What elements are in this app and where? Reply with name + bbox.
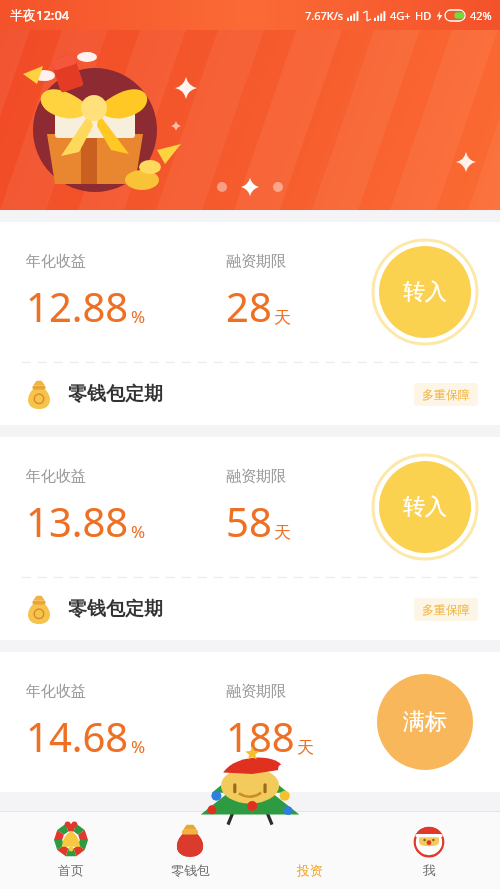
button[interactable]: 满标 bbox=[372, 669, 478, 775]
button[interactable]: 零钱包 bbox=[142, 812, 238, 889]
staticText: 188 bbox=[226, 709, 295, 763]
button[interactable]: 年化收益 bbox=[0, 652, 500, 792]
staticText: 零钱包 bbox=[171, 862, 210, 878]
button[interactable]: 我 bbox=[381, 812, 477, 889]
staticText: 28 bbox=[226, 279, 272, 333]
staticText: 多重保障 bbox=[422, 387, 470, 402]
staticText: 7.67K/s bbox=[305, 8, 343, 23]
staticText: 我 bbox=[423, 862, 436, 878]
staticText: 4G+ bbox=[390, 8, 411, 23]
staticText: 年化收益 bbox=[26, 467, 86, 486]
staticText: 首页 bbox=[58, 862, 84, 878]
staticText: 融资期限 bbox=[226, 467, 286, 486]
button[interactable]: 投资 吉祥物 bbox=[194, 749, 306, 827]
staticText: 14.68 bbox=[26, 709, 129, 763]
staticText: % bbox=[131, 520, 146, 543]
staticText: 年化收益 bbox=[26, 252, 86, 271]
button[interactable]: 转入 bbox=[372, 239, 478, 345]
staticText: HD bbox=[415, 8, 432, 23]
staticText: % bbox=[131, 305, 146, 328]
staticText: 转入 bbox=[403, 493, 447, 521]
button[interactable]: 投资 bbox=[262, 812, 358, 889]
staticText: 零钱包定期 bbox=[68, 382, 163, 406]
staticText: 42% bbox=[470, 8, 492, 23]
staticText: 满标 bbox=[403, 708, 447, 736]
staticText: 13.88 bbox=[26, 494, 129, 548]
staticText: 融资期限 bbox=[226, 682, 286, 701]
button[interactable]: 转入 bbox=[372, 454, 478, 560]
staticText: % bbox=[131, 735, 146, 758]
staticText: 融资期限 bbox=[226, 252, 286, 271]
staticText: 多重保障 bbox=[422, 602, 470, 617]
staticText: 转入 bbox=[403, 278, 447, 306]
staticText: 零钱包定期 bbox=[68, 597, 163, 621]
staticText: 12.88 bbox=[26, 279, 129, 333]
button[interactable]: 年化收益 bbox=[0, 222, 500, 425]
staticText: 天 bbox=[297, 737, 314, 758]
staticText: 半夜12:04 bbox=[10, 6, 70, 24]
staticText: 58 bbox=[226, 494, 272, 548]
button[interactable]: 年化收益 bbox=[0, 437, 500, 640]
staticText: 投资 bbox=[297, 862, 323, 878]
button[interactable]: 做任务领福利 活动横幅 bbox=[0, 30, 500, 210]
staticText: 天 bbox=[274, 307, 291, 328]
staticText: 天 bbox=[274, 522, 291, 543]
button[interactable]: 首页 bbox=[23, 812, 119, 889]
staticText: 年化收益 bbox=[26, 682, 86, 701]
